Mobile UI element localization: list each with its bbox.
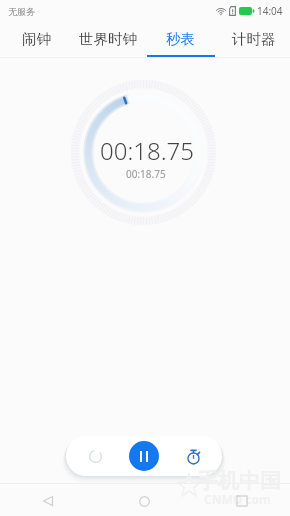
- button[interactable]: 闹钟: [0, 22, 72, 58]
- staticText: CNMO com: [204, 491, 271, 507]
- button[interactable]: 计时器: [217, 22, 290, 58]
- staticText: 00:18.75: [100, 134, 194, 167]
- staticText: 计时器: [232, 30, 276, 48]
- button[interactable]: Lap: [178, 441, 208, 471]
- button[interactable]: 秒表: [144, 22, 217, 58]
- button[interactable]: Reset: [80, 441, 110, 471]
- staticText: 秒表: [166, 30, 195, 48]
- staticText: 闹钟: [22, 30, 51, 48]
- button[interactable]: 世界时钟: [72, 22, 144, 58]
- button[interactable]: Pause: [129, 441, 159, 471]
- staticText: 无服务: [8, 6, 35, 17]
- staticText: 世界时钟: [79, 30, 137, 48]
- staticText: 手机中国: [197, 468, 281, 494]
- button[interactable]: Home: [96, 486, 193, 516]
- button[interactable]: Recents: [193, 486, 290, 516]
- staticText: 14:04: [257, 4, 283, 18]
- staticText: 00:18.75: [126, 167, 166, 181]
- button[interactable]: Back: [0, 486, 96, 516]
